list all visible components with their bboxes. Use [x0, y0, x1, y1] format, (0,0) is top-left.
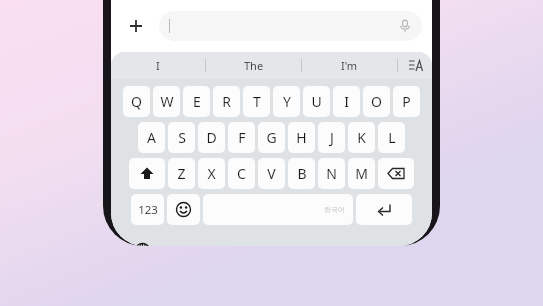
button[interactable]: E — [183, 86, 210, 117]
button[interactable]: P — [393, 86, 420, 117]
staticText: M — [355, 164, 368, 183]
button[interactable]: K — [348, 122, 375, 153]
button[interactable]: Q — [123, 86, 150, 117]
button[interactable]: Add attachment — [121, 11, 151, 41]
staticText: U — [311, 92, 322, 111]
staticText: A — [147, 128, 156, 147]
button[interactable]: G — [258, 122, 285, 153]
button[interactable]: Y — [273, 86, 300, 117]
staticText: Y — [283, 92, 291, 111]
button[interactable]: Space — [203, 194, 353, 225]
staticText: W — [160, 92, 174, 111]
staticText: 123 — [138, 202, 158, 218]
button[interactable]: Emoji — [167, 194, 200, 225]
staticText: D — [206, 128, 217, 147]
button[interactable]: C — [228, 158, 255, 189]
staticText: I'm — [341, 58, 358, 73]
button[interactable]: T — [243, 86, 270, 117]
button[interactable]: W — [153, 86, 180, 117]
button[interactable]: D — [198, 122, 225, 153]
button[interactable]: O — [363, 86, 390, 117]
button[interactable]: A — [138, 122, 165, 153]
staticText: K — [357, 128, 366, 147]
button[interactable]: B — [288, 158, 315, 189]
button[interactable]: L — [378, 122, 405, 153]
button[interactable]: F — [228, 122, 255, 153]
button[interactable]: Shift — [129, 158, 165, 189]
button[interactable] — [159, 11, 422, 41]
staticText: V — [267, 164, 276, 183]
button[interactable]: Return — [356, 194, 412, 225]
button[interactable]: H — [288, 122, 315, 153]
button[interactable]: R — [213, 86, 240, 117]
staticText: 한국어 — [324, 205, 345, 214]
staticText: R — [222, 92, 231, 111]
button[interactable]: X — [198, 158, 225, 189]
button[interactable]: 123 — [131, 194, 164, 225]
staticText: J — [330, 128, 334, 147]
staticText: P — [402, 92, 411, 111]
staticText: E — [193, 92, 201, 111]
staticText: L — [388, 128, 396, 147]
button[interactable]: The — [206, 52, 301, 79]
button[interactable]: Z — [168, 158, 195, 189]
button[interactable]: M — [348, 158, 375, 189]
button[interactable]: I'm — [302, 52, 397, 79]
button[interactable]: Backspace — [378, 158, 414, 189]
staticText: S — [178, 128, 186, 147]
button[interactable]: I — [333, 86, 360, 117]
staticText: O — [371, 92, 382, 111]
button[interactable]: V — [258, 158, 285, 189]
staticText: Z — [177, 164, 186, 183]
staticText: Q — [131, 92, 142, 111]
button[interactable]: J — [318, 122, 345, 153]
staticText: C — [237, 164, 246, 183]
button[interactable]: Text formatting — [398, 52, 432, 79]
staticText: The — [244, 58, 264, 73]
staticText: H — [296, 128, 307, 147]
staticText: T — [253, 92, 261, 111]
button[interactable]: I — [111, 52, 205, 79]
button[interactable]: U — [303, 86, 330, 117]
staticText: G — [266, 128, 277, 147]
staticText: B — [297, 164, 307, 183]
staticText: I — [156, 58, 160, 73]
button[interactable]: S — [168, 122, 195, 153]
staticText: I — [344, 92, 349, 111]
staticText: F — [238, 128, 246, 147]
button[interactable]: N — [318, 158, 345, 189]
staticText: X — [207, 164, 216, 183]
staticText: N — [326, 164, 337, 183]
